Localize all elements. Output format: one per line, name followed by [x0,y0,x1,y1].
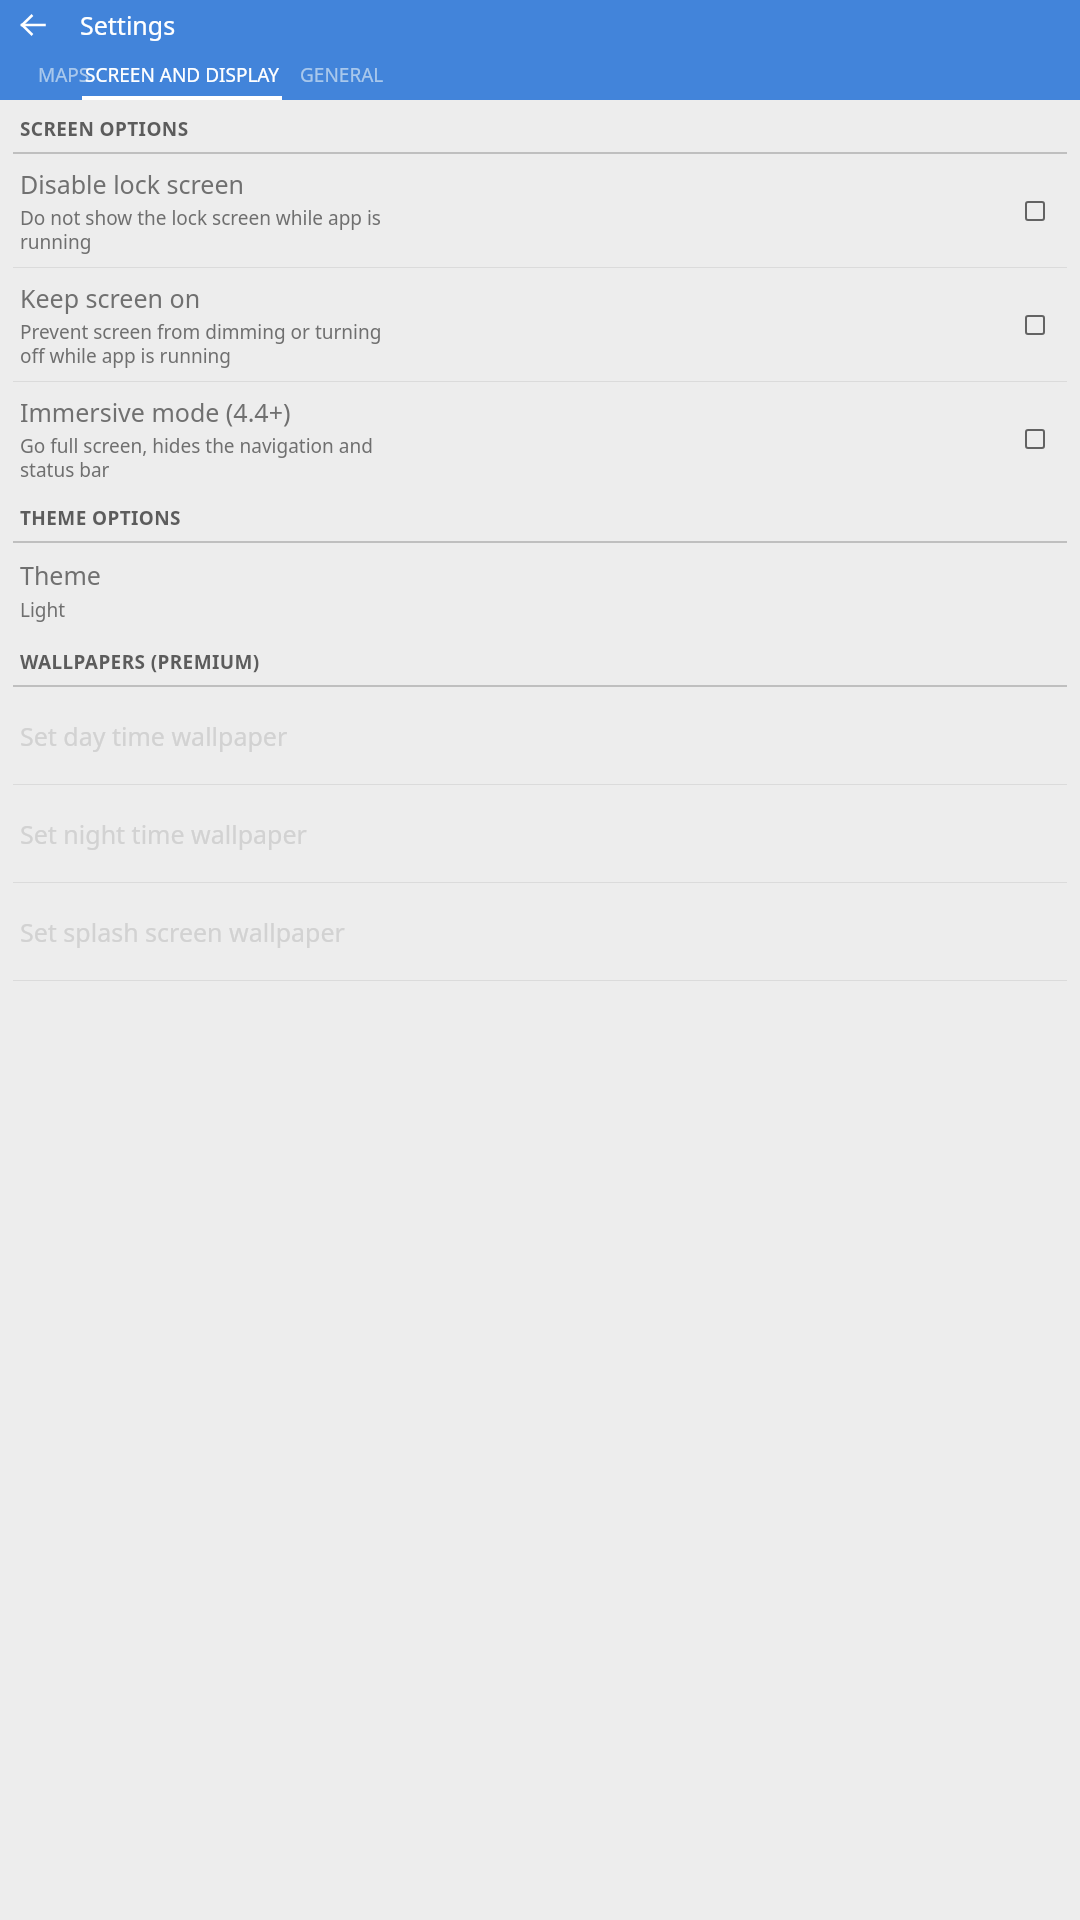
button[interactable]: Set splash screen wallpaper [0,883,1080,980]
staticText: Prevent screen from dimming or turning o… [20,319,382,368]
button[interactable]: Keep screen on [0,268,1080,381]
button[interactable]: Toggle Keep screen on [1012,302,1058,348]
button[interactable]: MAPS [0,50,82,100]
button[interactable]: Toggle Immersive mode (4.4+) [1012,416,1058,462]
staticText: Go full screen, hides the navigation and… [20,433,373,482]
staticText: Set night time wallpaper [20,817,307,851]
staticText: Set splash screen wallpaper [20,915,345,949]
staticText: SCREEN OPTIONS [20,116,189,142]
staticText: Settings [80,8,176,42]
button[interactable]: Theme [0,543,1080,639]
button[interactable]: Set day time wallpaper [0,687,1080,784]
button[interactable]: Set night time wallpaper [0,785,1080,882]
staticText: Do not show the lock screen while app is… [20,205,381,254]
staticText: Light [20,597,66,623]
button[interactable]: GENERAL [282,50,1080,100]
staticText: Immersive mode (4.4+) [20,395,291,429]
staticText: Theme [20,558,101,592]
staticText: MAPS [38,62,90,88]
staticText: THEME OPTIONS [20,505,181,531]
staticText: Disable lock screen [20,167,245,201]
button[interactable]: Back [12,4,54,46]
button[interactable]: Immersive mode (4.4+) [0,382,1080,495]
staticText: Keep screen on [20,281,201,315]
staticText: Set day time wallpaper [20,719,288,753]
button[interactable]: Disable lock screen [0,154,1080,267]
button[interactable]: SCREEN AND DISPLAY [82,50,282,100]
staticText: SCREEN AND DISPLAY [85,62,280,88]
staticText: GENERAL [300,62,384,88]
staticText: WALLPAPERS (PREMIUM) [20,649,260,675]
button[interactable]: Toggle Disable lock screen [1012,188,1058,234]
